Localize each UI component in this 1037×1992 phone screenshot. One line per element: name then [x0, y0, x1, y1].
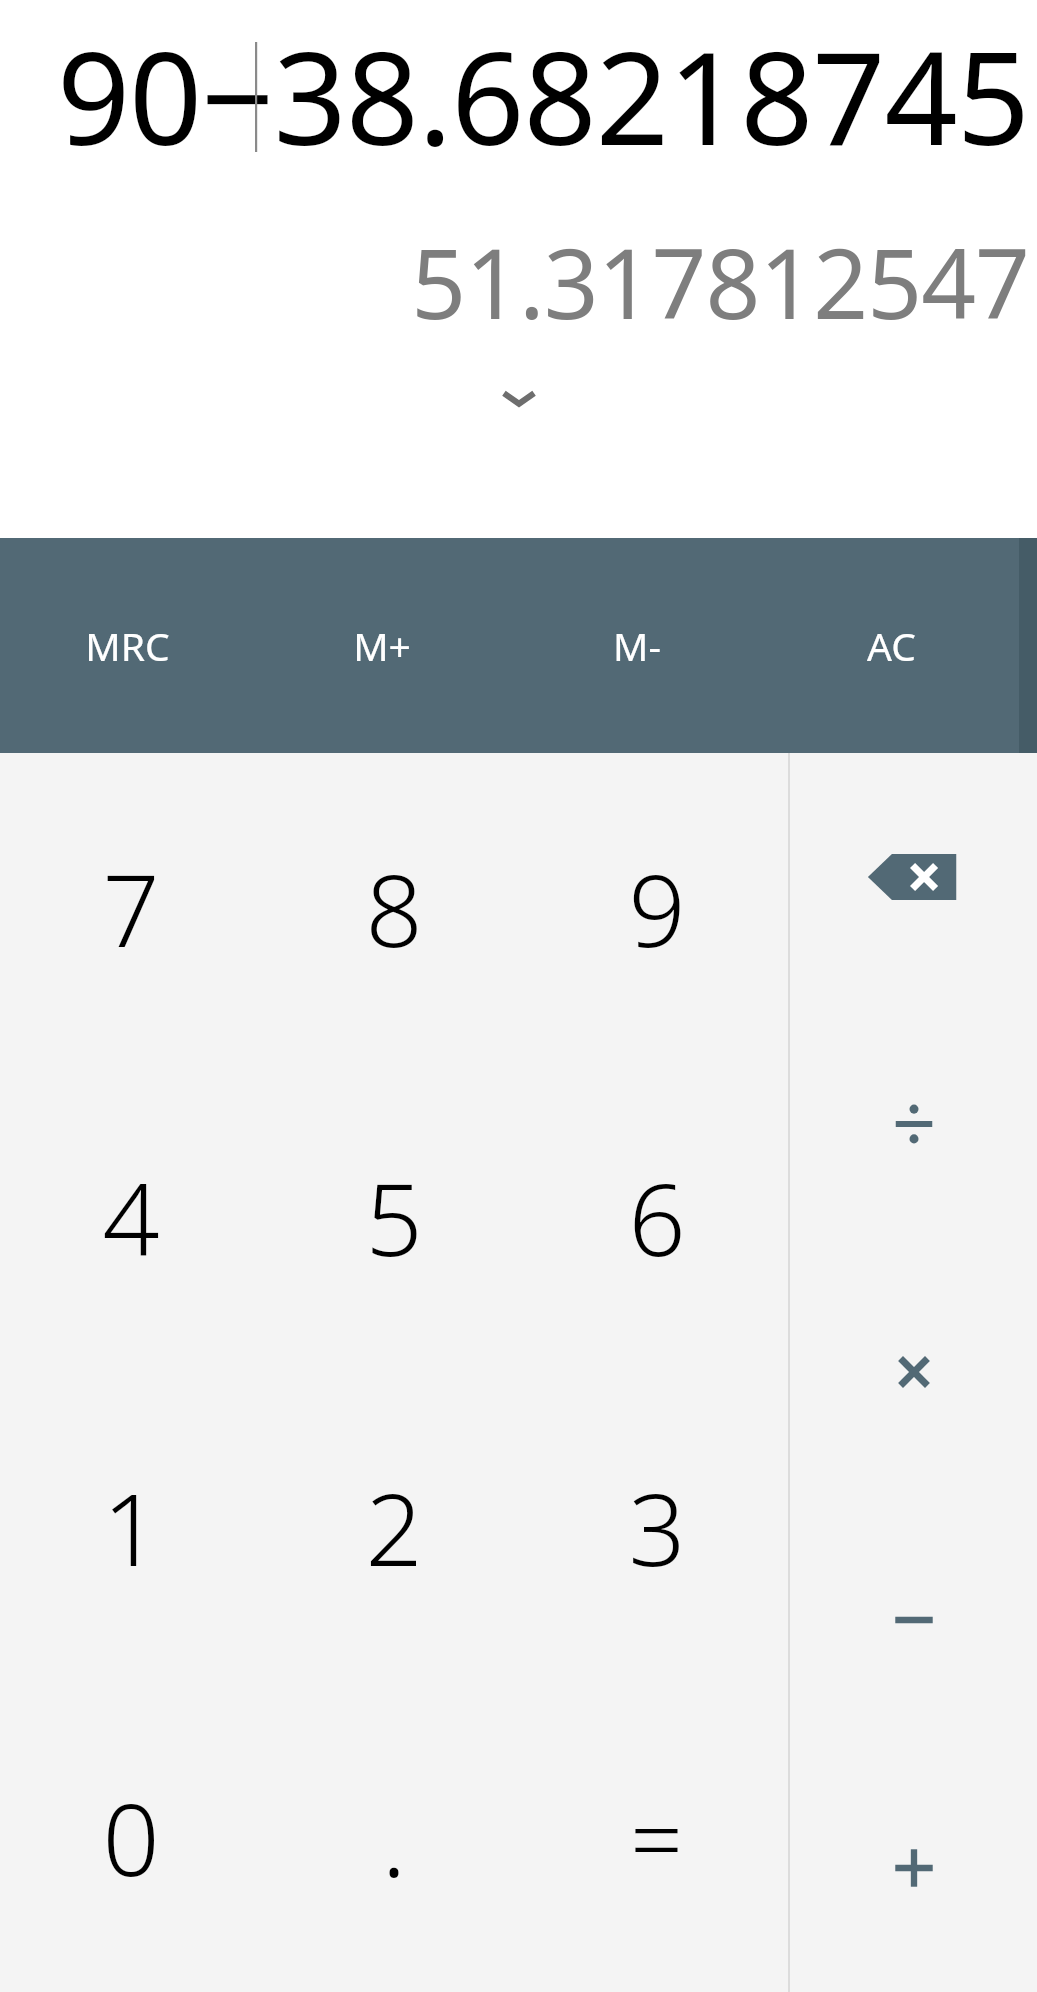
button[interactable]: Divide	[790, 1000, 1037, 1248]
staticText: AC	[867, 619, 916, 672]
button[interactable]: MRC	[0, 538, 254, 753]
button[interactable]: M+	[254, 538, 509, 753]
button[interactable]: Collapse history	[479, 364, 559, 434]
button[interactable]: Add	[790, 1744, 1037, 1992]
button[interactable]: Subtract	[790, 1496, 1037, 1744]
button[interactable]: 4	[0, 1062, 262, 1372]
button[interactable]: 2	[262, 1372, 525, 1682]
button[interactable]: M-	[509, 538, 764, 753]
button[interactable]: 9	[525, 753, 788, 1062]
staticText: 2	[365, 1459, 423, 1595]
button[interactable]: Backspace	[790, 753, 1037, 1000]
button[interactable]: 90−38.682187453	[0, 8, 1029, 182]
staticText: MRC	[85, 619, 170, 672]
button[interactable]: .	[262, 1682, 525, 1992]
staticText: =	[630, 1775, 683, 1900]
button[interactable]: 3	[525, 1372, 788, 1682]
staticText: 0	[102, 1769, 160, 1905]
staticText: .	[381, 1766, 407, 1908]
staticText: 7	[102, 840, 160, 976]
button[interactable]: 0	[0, 1682, 262, 1992]
staticText: M-	[613, 619, 661, 672]
staticText: 51.317812547	[0, 216, 1029, 347]
staticText: 4	[102, 1149, 160, 1285]
button[interactable]: 8	[262, 753, 525, 1062]
staticText: 3	[628, 1459, 686, 1595]
button[interactable]: 5	[262, 1062, 525, 1372]
button[interactable]: =	[525, 1682, 788, 1992]
button[interactable]: 6	[525, 1062, 788, 1372]
staticText: 9	[628, 840, 686, 976]
staticText: 6	[628, 1149, 686, 1285]
button[interactable]: AC	[764, 538, 1019, 753]
staticText: 90−38.682187453	[0, 8, 1029, 182]
button[interactable]: 7	[0, 753, 262, 1062]
button[interactable]: Multiply	[790, 1248, 1037, 1496]
staticText: 5	[365, 1149, 423, 1285]
staticText: 8	[365, 840, 423, 976]
staticText: M+	[353, 619, 411, 672]
staticText: 1	[102, 1459, 160, 1595]
button[interactable]: 1	[0, 1372, 262, 1682]
